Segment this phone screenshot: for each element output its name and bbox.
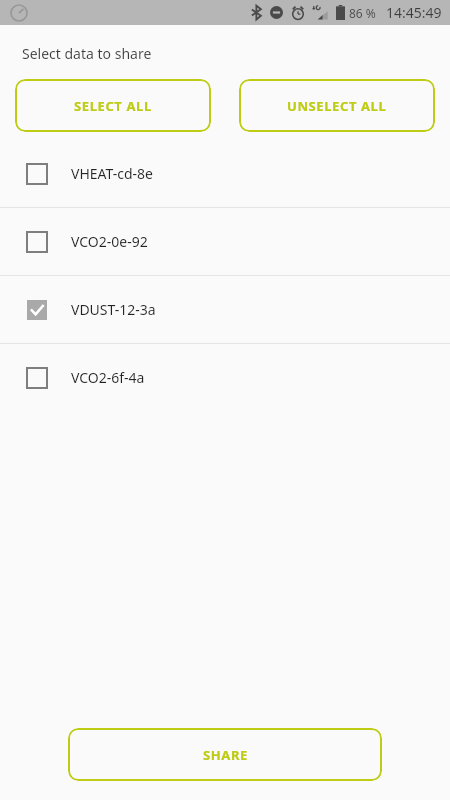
staticText: 14:45:49 [386, 3, 442, 22]
staticText: SHARE [203, 746, 248, 764]
other: Unchecked [27, 232, 47, 252]
other: App icon [10, 4, 28, 22]
button[interactable]: Unchecked [0, 344, 450, 411]
staticText: Select data to share [22, 44, 152, 63]
other: Unchecked [27, 164, 47, 184]
button[interactable]: Unchecked [0, 140, 450, 207]
button[interactable]: UNSELECT ALL [239, 79, 435, 132]
staticText: VCO2-6f-4a [71, 368, 145, 387]
button[interactable]: Checked [0, 276, 450, 343]
other: Unchecked [27, 368, 47, 388]
staticText: UNSELECT ALL [287, 97, 387, 115]
button[interactable]: SELECT ALL [15, 79, 211, 132]
staticText: VHEAT-cd-8e [71, 164, 153, 183]
button[interactable]: Unchecked [0, 208, 450, 275]
staticText: SELECT ALL [74, 97, 152, 115]
staticText: VDUST-12-3a [71, 300, 156, 319]
other: Checked [27, 300, 47, 320]
button[interactable]: SHARE [68, 728, 382, 781]
staticText: 86 % [349, 5, 376, 21]
staticText: VCO2-0e-92 [71, 232, 148, 251]
